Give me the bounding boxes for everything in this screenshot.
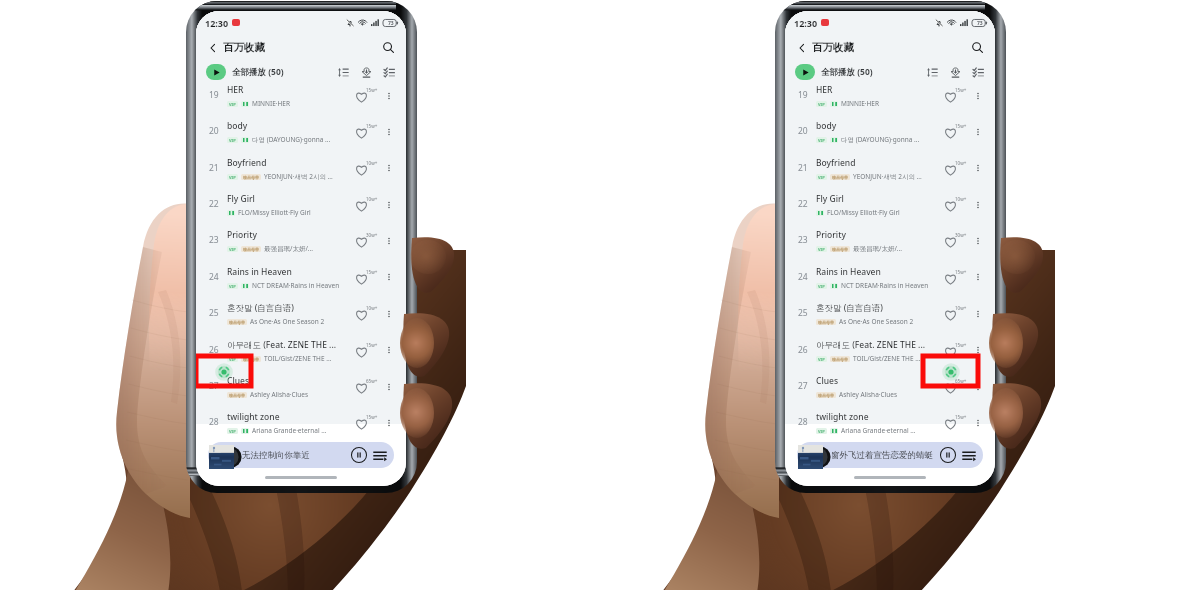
button[interactable]: 22 [196, 186, 406, 222]
staticText: 24 [798, 271, 808, 283]
button[interactable]: Back [796, 42, 808, 54]
staticText: YEONJUN·새벽 2시의 ... [264, 172, 333, 181]
button[interactable]: More options [382, 416, 395, 429]
button[interactable]: More options [382, 234, 395, 247]
staticText: VIP [818, 102, 825, 107]
staticText: 24 [209, 271, 219, 283]
button[interactable]: Pause [940, 447, 956, 463]
button[interactable]: More options [382, 343, 395, 356]
staticText: TOIL/Gist/ZENE THE ... [853, 354, 921, 363]
button[interactable]: Download [361, 67, 372, 78]
staticText: twilight zone [816, 411, 869, 423]
staticText: VIP [818, 175, 825, 180]
button[interactable]: More options [971, 234, 984, 247]
button[interactable]: 24 [785, 258, 995, 295]
button[interactable]: More options [971, 416, 984, 429]
staticText: NCT DREAM·Rains in Heaven [841, 281, 929, 290]
button[interactable]: Like [944, 304, 971, 322]
button[interactable]: Like [355, 159, 382, 177]
staticText: Boyfriend [816, 157, 856, 169]
button[interactable]: Like [355, 304, 382, 322]
button[interactable]: Like [355, 268, 382, 286]
button[interactable]: Download [950, 67, 961, 78]
staticText: 15w+ [955, 342, 967, 348]
button[interactable]: 无法控制向你靠近 [208, 442, 394, 468]
button[interactable]: More options [971, 307, 984, 320]
button[interactable]: 19 [785, 77, 995, 113]
button[interactable]: 25 [785, 295, 995, 331]
staticText: VIP [229, 138, 236, 143]
button[interactable]: More options [382, 380, 395, 393]
button[interactable]: Like [944, 377, 971, 395]
button[interactable]: Like [944, 159, 971, 177]
button[interactable]: Like [355, 231, 382, 249]
button[interactable]: More options [971, 89, 984, 102]
staticText: VIP [229, 429, 236, 434]
button[interactable]: Multi-select [973, 67, 984, 78]
button[interactable]: 21 [785, 149, 995, 186]
button[interactable]: More options [971, 270, 984, 283]
button[interactable]: More options [971, 161, 984, 174]
button[interactable]: Sort [927, 67, 938, 78]
button[interactable]: 19 [196, 77, 406, 113]
staticText: 窗外飞过着宣告恋爱的蜻蜓 [831, 450, 933, 461]
button[interactable]: 27 [785, 368, 995, 404]
button[interactable]: More options [382, 198, 395, 211]
button[interactable]: 23 [785, 222, 995, 258]
button[interactable]: Search [971, 41, 984, 54]
button[interactable]: Like [355, 341, 382, 359]
button[interactable]: 20 [785, 113, 995, 149]
button[interactable]: Like [355, 413, 382, 431]
button[interactable]: Like [944, 86, 971, 104]
button[interactable]: 全部播放 (50) [795, 64, 873, 80]
staticText: HER [227, 84, 244, 96]
button[interactable]: 26 [785, 331, 995, 368]
staticText: 다영 (DAYOUNG)·gonna ... [841, 135, 920, 144]
staticText: 臻品母带 [832, 247, 848, 252]
button[interactable]: Sort [338, 67, 349, 78]
button[interactable]: More options [382, 161, 395, 174]
button[interactable]: More options [971, 198, 984, 211]
button[interactable]: 28 [196, 404, 406, 440]
staticText: 다영 (DAYOUNG)·gonna ... [252, 135, 331, 144]
button[interactable]: 25 [196, 295, 406, 331]
staticText: VIP [229, 247, 236, 252]
button[interactable]: 24 [196, 258, 406, 295]
button[interactable]: Pause [351, 447, 367, 463]
button[interactable]: 窗外飞过着宣告恋爱的蜻蜓 [797, 442, 983, 468]
button[interactable]: Like [944, 413, 971, 431]
staticText: Ashley Alisha·Clues [250, 390, 309, 399]
button[interactable]: Like [355, 86, 382, 104]
button[interactable]: 21 [196, 149, 406, 186]
button[interactable]: Like [944, 122, 971, 140]
button[interactable]: Playlist [962, 448, 976, 462]
button[interactable]: Like [355, 195, 382, 213]
button[interactable]: Like [355, 122, 382, 140]
button[interactable]: Playlist [373, 448, 387, 462]
staticText: 臻品母带 [243, 247, 259, 252]
button[interactable]: More options [971, 125, 984, 138]
button[interactable]: More options [382, 270, 395, 283]
button[interactable]: More options [382, 307, 395, 320]
staticText: MINNIE·HER [841, 99, 880, 108]
button[interactable]: 20 [196, 113, 406, 149]
button[interactable]: 22 [785, 186, 995, 222]
button[interactable]: Like [944, 268, 971, 286]
button[interactable]: Search [382, 41, 395, 54]
button[interactable]: 28 [785, 404, 995, 440]
button[interactable]: 23 [196, 222, 406, 258]
button[interactable]: Like [944, 231, 971, 249]
button[interactable]: Like [355, 377, 382, 395]
button[interactable]: Back [207, 42, 219, 54]
button[interactable]: More options [382, 89, 395, 102]
button[interactable]: Multi-select [384, 67, 395, 78]
button[interactable]: 27 [196, 368, 406, 404]
button[interactable]: Like [944, 195, 971, 213]
button[interactable]: 全部播放 (50) [206, 64, 284, 80]
button[interactable]: More options [382, 125, 395, 138]
button[interactable]: 26 [196, 331, 406, 368]
button[interactable]: More options [971, 343, 984, 356]
button[interactable]: More options [971, 380, 984, 393]
staticText: 23 [209, 234, 219, 246]
button[interactable]: Like [944, 341, 971, 359]
